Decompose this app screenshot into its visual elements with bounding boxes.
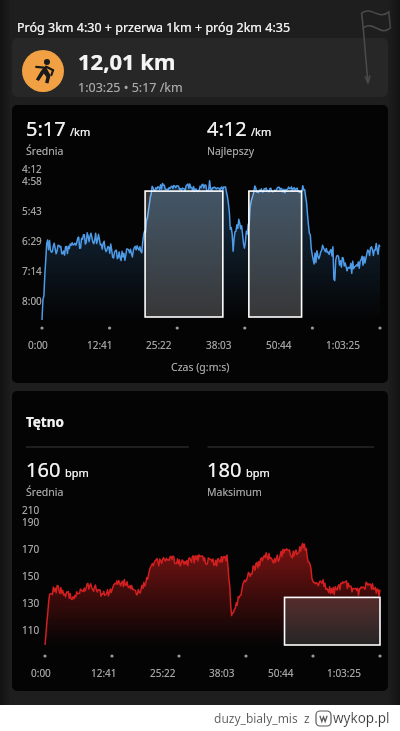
- staticText: 1:03:25: [327, 666, 361, 680]
- staticText: 170: [22, 542, 40, 556]
- staticText: 1:03:25: [326, 338, 360, 352]
- staticText: 7:14: [22, 264, 42, 278]
- staticText: 150: [22, 569, 40, 583]
- staticText: 6:29: [22, 234, 42, 248]
- staticText: Próg 3km 4:30 + przerwa 1km + próg 2km 4…: [17, 19, 291, 36]
- staticText: 110: [22, 623, 40, 637]
- staticText: 50:44: [268, 666, 294, 680]
- staticText: wykop.pl: [333, 709, 390, 727]
- staticText: Najlepszy: [207, 144, 254, 158]
- staticText: Średnia: [26, 144, 64, 158]
- staticText: 25:22: [150, 666, 176, 680]
- staticText: 190: [22, 515, 40, 529]
- staticText: 1:03:25 • 5:17 /km: [78, 79, 183, 96]
- staticText: Średnia: [26, 485, 64, 499]
- staticText: 12:41: [91, 666, 117, 680]
- staticText: 38:03: [209, 666, 235, 680]
- staticText: 180: [207, 456, 242, 483]
- staticText: 0:00: [28, 338, 48, 352]
- staticText: 12:41: [87, 338, 113, 352]
- staticText: 210: [22, 503, 40, 515]
- staticText: 4:12: [207, 115, 247, 142]
- staticText: 5:43: [22, 204, 42, 218]
- staticText: Czas (g:m:s): [171, 360, 230, 374]
- button[interactable]: 5:17: [12, 105, 388, 383]
- staticText: 25:22: [146, 338, 172, 352]
- staticText: 8:00: [22, 294, 42, 308]
- staticText: /km: [70, 124, 91, 139]
- button[interactable]: Running activity: [22, 50, 64, 92]
- staticText: 38:03: [206, 338, 232, 352]
- staticText: 130: [22, 596, 40, 610]
- button[interactable]: Tętno: [12, 391, 388, 691]
- staticText: 12,01 km: [78, 46, 176, 76]
- staticText: 5:17: [26, 115, 66, 142]
- staticText: Maksimum: [207, 485, 262, 499]
- staticText: /km: [251, 124, 272, 139]
- staticText: Tętno: [26, 413, 64, 431]
- staticText: 4:12: [22, 162, 42, 174]
- staticText: 4:58: [22, 174, 42, 188]
- staticText: 0:00: [31, 666, 51, 680]
- staticText: duzy_bialy_mis z: [214, 710, 316, 726]
- staticText: bpm: [65, 465, 89, 480]
- staticText: 50:44: [266, 338, 292, 352]
- staticText: 160: [26, 456, 61, 483]
- staticText: bpm: [246, 465, 270, 480]
